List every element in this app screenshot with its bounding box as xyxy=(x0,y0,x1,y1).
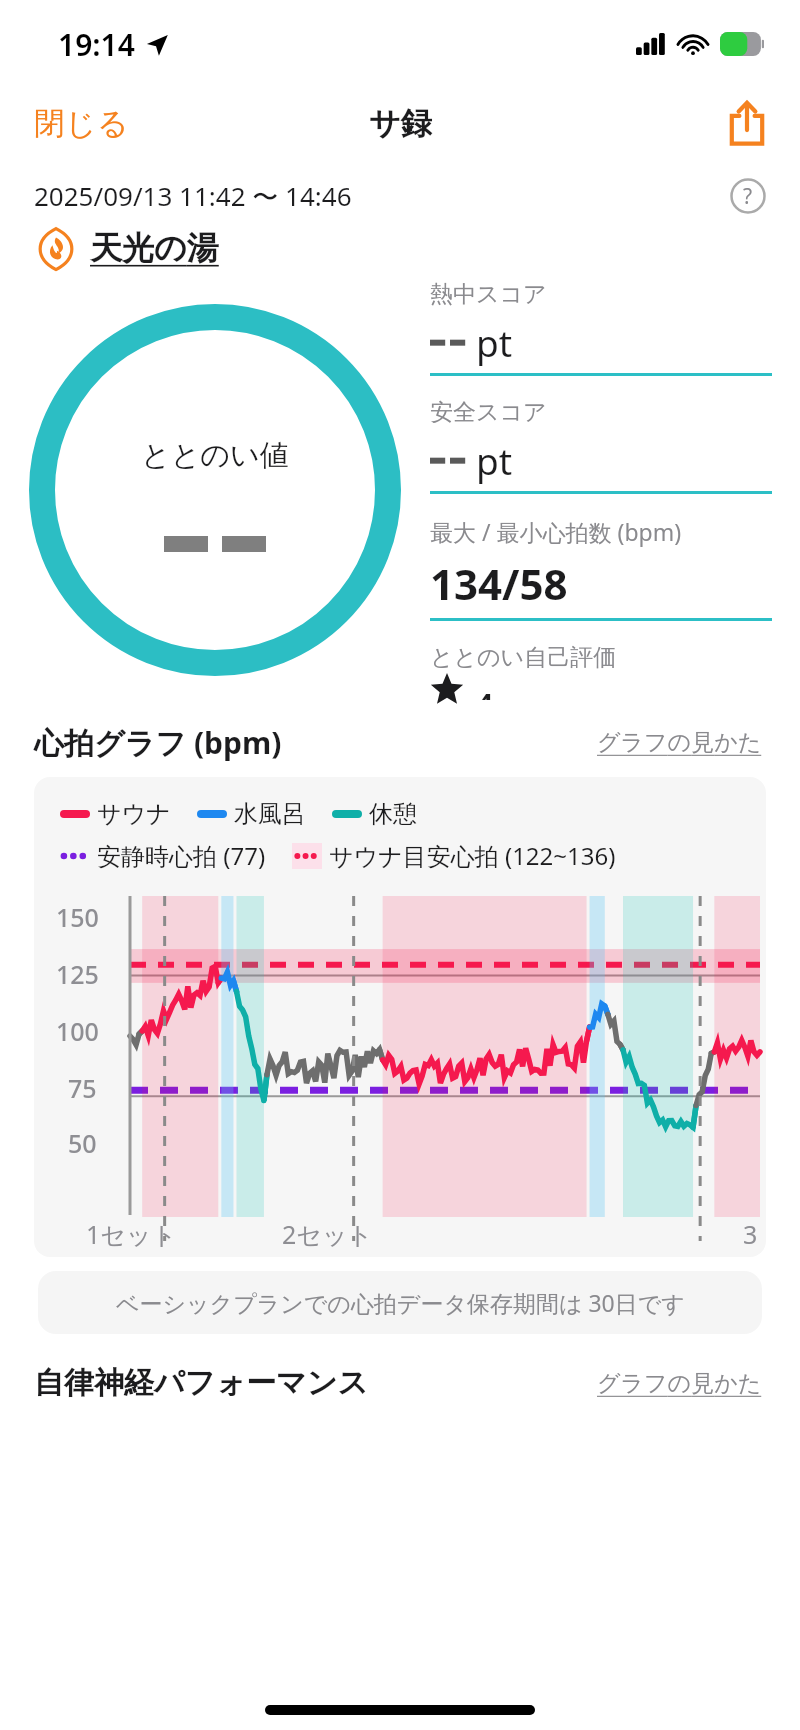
staticText: 3 xyxy=(743,1217,758,1251)
staticText: 2セット xyxy=(282,1217,374,1251)
staticText: 150 xyxy=(56,900,99,934)
staticText: 休憩 xyxy=(369,799,417,829)
button[interactable]: Share xyxy=(712,95,800,151)
staticText: グラフの見かた xyxy=(597,728,762,757)
staticText: 安静時心拍 (77) xyxy=(97,839,266,872)
staticText: 天光の湯 xyxy=(90,228,219,268)
staticText: 自律神経パフォーマンス xyxy=(34,1364,369,1402)
staticText: ? xyxy=(743,182,753,211)
staticText: サウナ目安心拍 (122~136) xyxy=(329,839,616,872)
staticText: ととのい値 xyxy=(141,437,289,474)
staticText: 100 xyxy=(56,1014,99,1048)
staticText: 心拍グラフ (bpm) xyxy=(34,722,282,763)
staticText: 50 xyxy=(68,1126,97,1160)
button[interactable]: 天光の湯 xyxy=(34,226,766,270)
staticText: 水風呂 xyxy=(234,799,306,829)
staticText: pt xyxy=(476,317,513,367)
staticText: 安全スコア xyxy=(430,398,547,427)
button[interactable]: Help xyxy=(730,178,766,214)
staticText: 2025/09/13 11:42 〜 14:46 xyxy=(34,178,352,214)
staticText: 1セット xyxy=(86,1217,178,1251)
staticText: 4 xyxy=(472,680,495,700)
staticText: サ録 xyxy=(369,104,432,143)
staticText: 熱中スコア xyxy=(430,280,547,309)
button[interactable]: 閉じる xyxy=(0,96,145,151)
staticText: グラフの見かた xyxy=(597,1369,762,1398)
button[interactable]: グラフの見かた xyxy=(593,724,766,761)
staticText: 19:14 xyxy=(58,24,135,65)
staticText: 134/58 xyxy=(430,555,568,612)
staticText: pt xyxy=(476,435,513,485)
button[interactable]: グラフの見かた xyxy=(593,1365,766,1402)
staticText: 75 xyxy=(68,1071,97,1105)
staticText: 125 xyxy=(56,957,99,991)
staticText: 最大 / 最小心拍数 (bpm) xyxy=(430,516,682,547)
staticText: サウナ xyxy=(97,799,171,829)
staticText: 閉じる xyxy=(34,104,129,143)
staticText: ベーシックプランでの心拍データ保存期間は 30日です xyxy=(116,1287,685,1318)
staticText: ととのい自己評価 xyxy=(430,643,617,672)
